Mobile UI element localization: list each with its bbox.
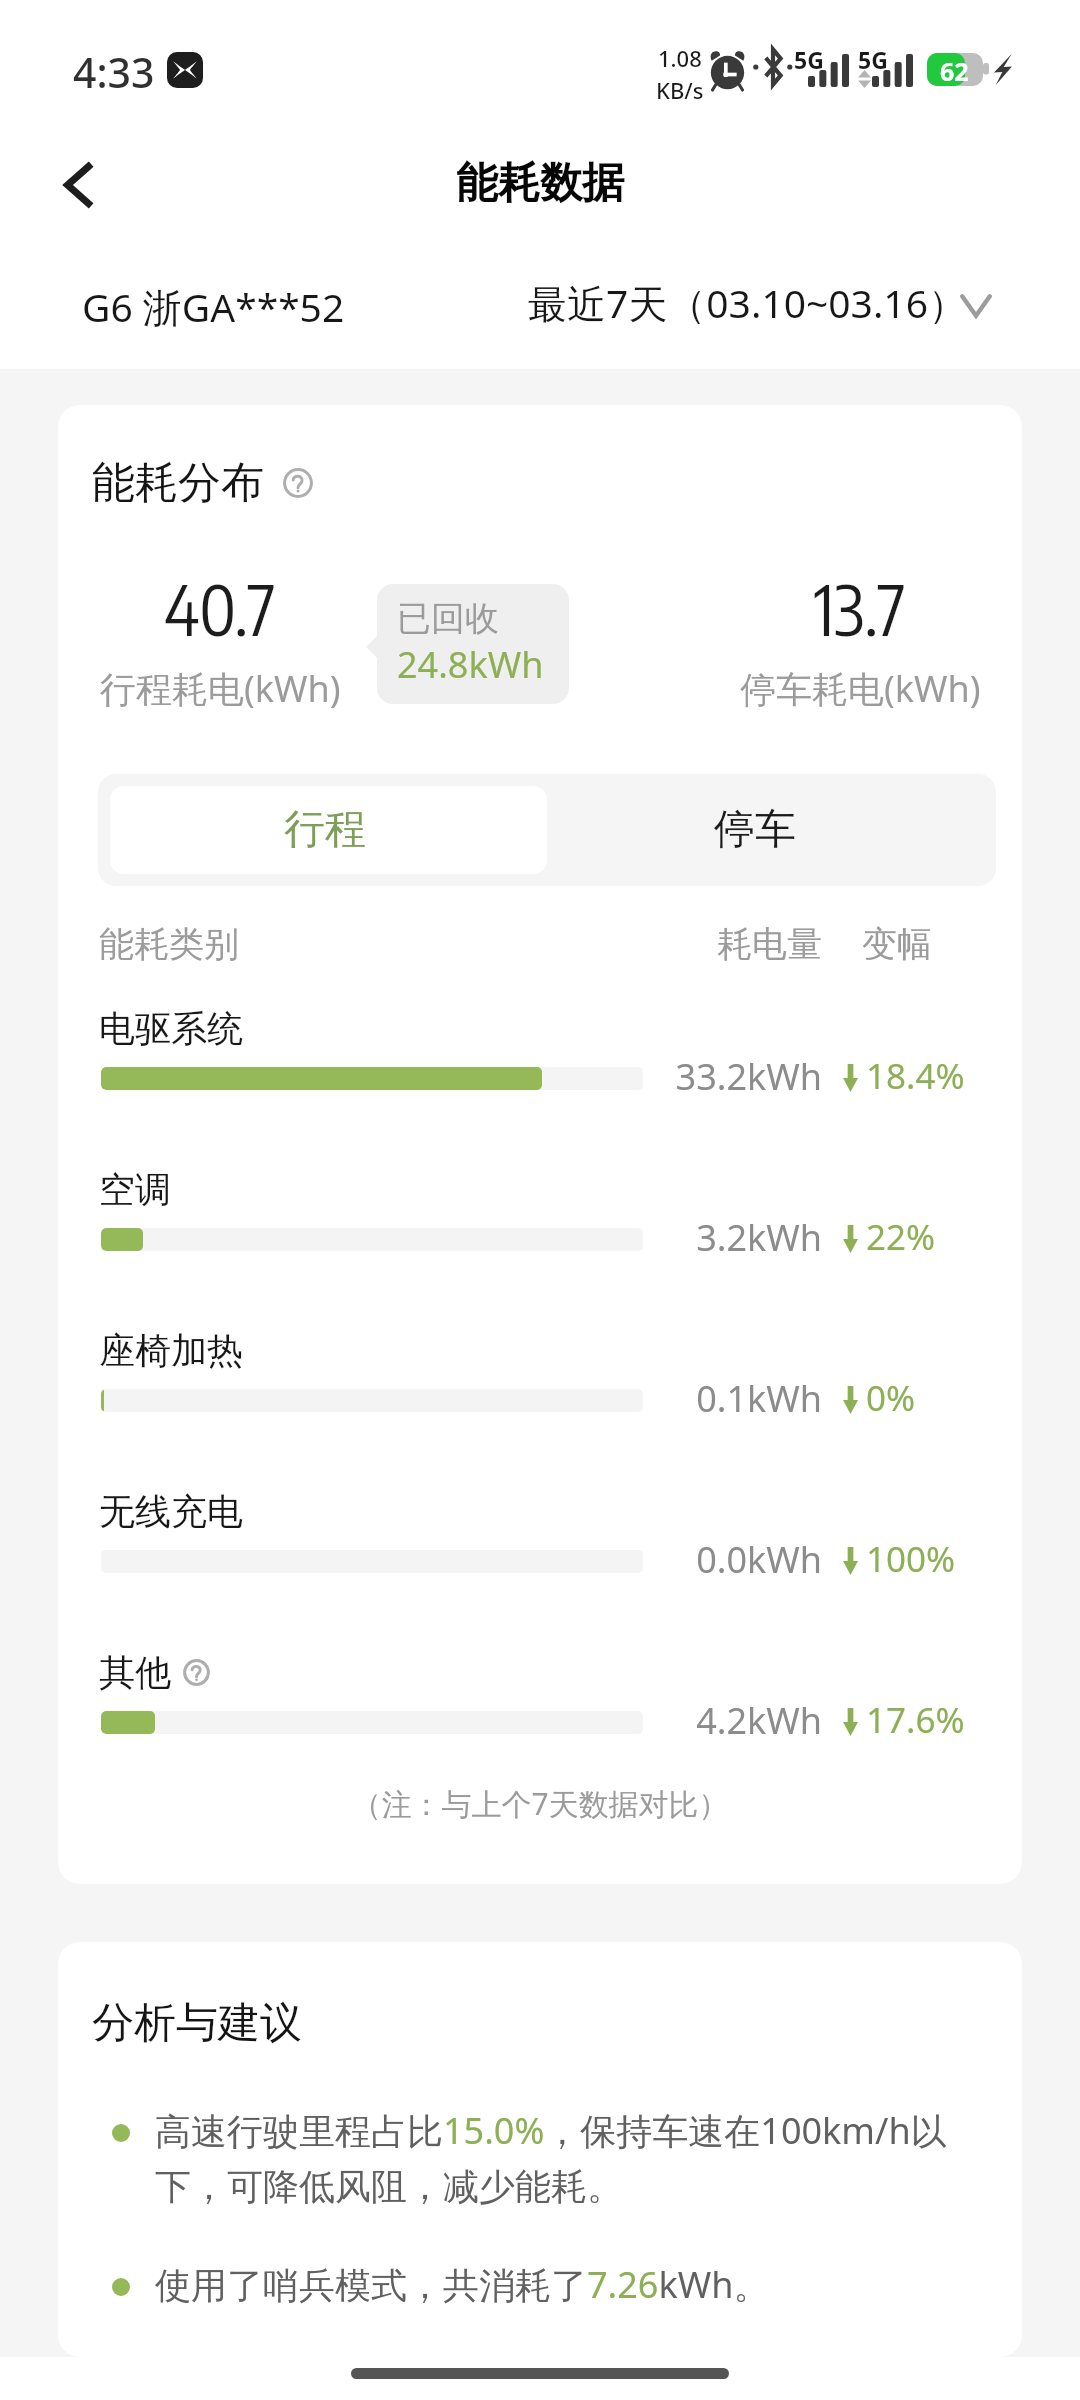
staticText: 1.08 (658, 43, 702, 73)
button[interactable]: Help (183, 1659, 210, 1686)
staticText: 33.2kWh (101, 1052, 822, 1101)
staticText: 5G (858, 44, 888, 75)
staticText: 座椅加热 (99, 1328, 243, 1373)
staticText: 0.0kWh (101, 1535, 822, 1584)
staticText: 能耗类别 (99, 922, 239, 966)
staticText: 高速行驶里程占比15.0%，保持车速在100km/h以下，可降低风阻，减少能耗。 (155, 2106, 991, 2210)
staticText: 停车 (714, 804, 796, 856)
staticText: 22% (866, 1213, 936, 1261)
staticText: 4:33 (73, 44, 155, 100)
staticText: KB/s (656, 75, 704, 105)
staticText: 40.7 (164, 566, 276, 651)
staticText: 100% (866, 1535, 956, 1583)
staticText: G6 浙GA***52 (82, 280, 345, 328)
button[interactable]: 最近7天（03.10~03.16） (528, 276, 967, 324)
button[interactable]: 停车 (547, 786, 984, 874)
staticText: 使用了哨兵模式，共消耗了7.26kWh。 (155, 2260, 991, 2309)
staticText: 空调 (99, 1167, 171, 1212)
staticText: 24.8kWh (397, 640, 544, 689)
staticText: 最近7天（03.10~03.16） (528, 276, 967, 324)
staticText: 5G (794, 44, 824, 75)
button[interactable]: 能耗分布 (92, 456, 313, 510)
staticText: 3.2kWh (101, 1213, 822, 1262)
staticText: 4.2kWh (101, 1696, 822, 1745)
staticText: 13.7 (814, 566, 906, 651)
staticText: 62 (940, 54, 969, 87)
staticText: 能耗数据 (456, 157, 624, 210)
button[interactable]: Back (36, 155, 120, 215)
button[interactable]: 行程 (110, 786, 547, 874)
staticText: 停车耗电(kWh) (740, 664, 981, 713)
staticText: 行程耗电(kWh) (100, 664, 341, 713)
staticText: 18.4% (866, 1052, 965, 1100)
staticText: 分析与建议 (92, 1997, 302, 2050)
staticText: 已回收 (397, 597, 499, 640)
staticText: 耗电量 (717, 922, 822, 966)
staticText: 变幅 (862, 922, 932, 966)
button[interactable]: Change date range (960, 294, 992, 318)
staticText: （注：与上个7天数据对比） (58, 1783, 1022, 1824)
staticText: 0% (866, 1374, 916, 1422)
staticText: 能耗分布 (92, 456, 264, 510)
staticText: 0.1kWh (101, 1374, 822, 1423)
staticText: 行程 (284, 804, 366, 856)
staticText: 无线充电 (99, 1489, 243, 1534)
staticText: 电驱系统 (99, 1006, 243, 1051)
staticText: 其他 (99, 1650, 171, 1695)
staticText: 17.6% (866, 1696, 965, 1744)
button[interactable]: Help (283, 468, 313, 498)
